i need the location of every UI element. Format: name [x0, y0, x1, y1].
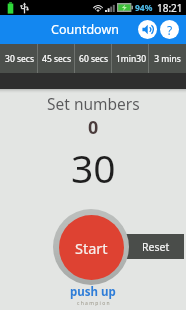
staticText: 30 [71, 141, 116, 194]
button[interactable]: 30 secs [0, 44, 38, 73]
staticText: push up [70, 284, 116, 300]
staticText: ? [167, 22, 173, 38]
button[interactable]: Start [53, 209, 129, 285]
staticText: Reset [142, 240, 170, 254]
staticText: c h a m p i o n [77, 300, 110, 307]
button[interactable]: Help [160, 20, 179, 39]
button[interactable]: Reset [110, 234, 184, 259]
staticText: 60 secs [79, 53, 108, 65]
staticText: 94% [135, 2, 153, 14]
staticText: Set numbers [47, 93, 140, 114]
button[interactable]: 45 secs [38, 44, 75, 73]
staticText: 30 secs [5, 53, 34, 65]
staticText: 1min30 [116, 53, 146, 65]
staticText: Countdown [51, 21, 119, 38]
button[interactable]: Sound [138, 20, 157, 39]
staticText: Start [75, 238, 108, 258]
staticText: 45 secs [42, 53, 71, 65]
button[interactable]: 1min30 [112, 44, 149, 73]
button[interactable]: 3 mins [149, 44, 186, 73]
staticText: 18:21 [157, 1, 183, 15]
staticText: 0 [88, 115, 99, 140]
staticText: 3 mins [154, 53, 181, 65]
button[interactable]: 60 secs [75, 44, 112, 73]
